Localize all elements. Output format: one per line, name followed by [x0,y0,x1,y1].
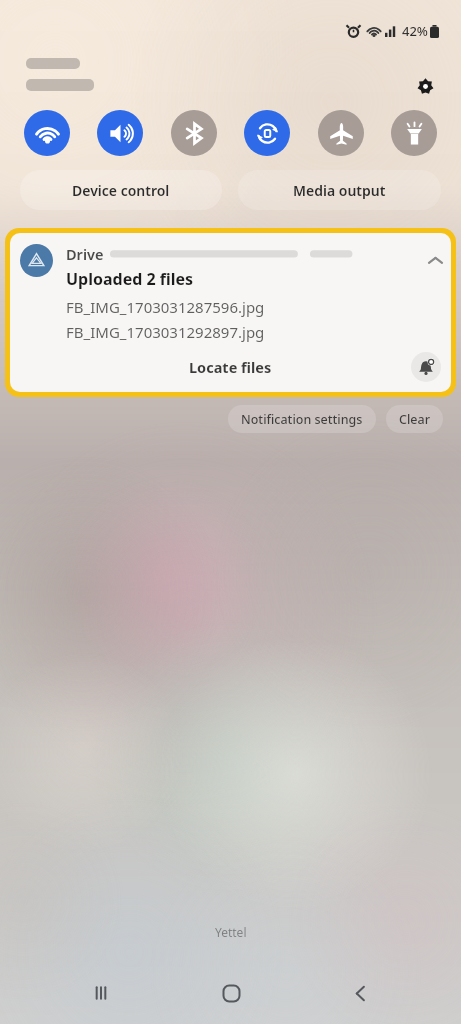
button[interactable]: Drive [10,233,451,392]
button[interactable]: Auto rotate [244,110,290,156]
button[interactable]: Notification options [411,352,441,382]
button[interactable]: Device control [20,170,222,210]
staticText: Drive [66,244,104,264]
staticText: Uploaded 2 files [66,268,194,290]
button[interactable]: Media output [238,170,441,210]
staticText: Device control [72,181,170,200]
staticText: 42% [402,22,428,40]
button[interactable]: Wi-Fi [24,110,70,156]
button[interactable]: Clear [386,405,443,433]
button[interactable]: Locate files [177,351,284,383]
staticText: Locate files [189,357,272,377]
staticText: Notification settings [241,411,363,428]
button[interactable]: Bluetooth [171,110,217,156]
button[interactable]: Airplane mode [318,110,364,156]
button[interactable]: Home [203,965,259,1021]
button[interactable]: Collapse [419,244,451,276]
button[interactable]: Recents [73,965,129,1021]
button[interactable]: Settings [405,66,445,106]
staticText: FB_IMG_1703031287596.jpg [66,297,265,317]
staticText: Clear [399,411,430,428]
button[interactable]: Flashlight [391,110,437,156]
button[interactable]: Sound [97,110,143,156]
staticText: FB_IMG_1703031292897.jpg [66,322,265,342]
button[interactable]: Back [332,965,388,1021]
staticText: Yettel [215,924,247,940]
staticText: Media output [293,181,386,200]
button[interactable]: Notification settings [228,405,376,433]
